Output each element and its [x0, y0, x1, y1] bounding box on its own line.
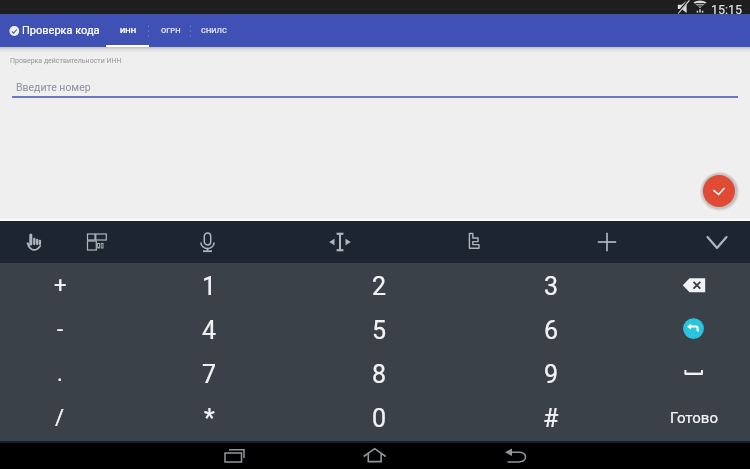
staticText: ИНН	[120, 26, 136, 35]
button[interactable]: Back	[491, 443, 541, 469]
staticText: 5	[372, 316, 387, 345]
staticText: 0	[372, 404, 387, 433]
staticText: /	[55, 405, 65, 431]
staticText: СНИЛС	[201, 26, 227, 35]
button[interactable]: 7	[120, 352, 298, 396]
staticText: 4	[202, 316, 217, 345]
button[interactable]: /	[0, 396, 120, 440]
button[interactable]: -	[0, 308, 120, 352]
button[interactable]: СНИЛС	[192, 14, 236, 47]
button[interactable]: 5	[298, 308, 461, 352]
button[interactable]: Hide keyboard	[696, 221, 738, 263]
button[interactable]: TouchPal	[452, 221, 494, 263]
button[interactable]: #	[461, 396, 641, 440]
staticText: 6	[544, 316, 559, 345]
button[interactable]: Handwriting	[13, 221, 55, 263]
staticText: 2	[372, 272, 387, 301]
button[interactable]: ОГРН	[149, 14, 192, 47]
staticText: .	[57, 361, 63, 387]
button[interactable]: Confirm	[703, 175, 735, 207]
button[interactable]: 0	[298, 396, 461, 440]
button[interactable]: Move cursor	[319, 221, 361, 263]
button[interactable]: Space	[641, 352, 750, 396]
button[interactable]: Home	[350, 443, 400, 469]
staticText: 3	[544, 272, 559, 301]
button[interactable]: 2	[298, 264, 461, 308]
staticText: 9	[544, 360, 559, 389]
staticText: 15:15	[711, 2, 743, 16]
button[interactable]: Add	[586, 221, 628, 263]
button[interactable]: 6	[461, 308, 641, 352]
button[interactable]: 3	[461, 264, 641, 308]
button[interactable]: Готово	[641, 396, 750, 440]
staticText: Проверка кода	[22, 24, 100, 37]
staticText: Введите номер	[16, 81, 91, 93]
button[interactable]: Voice input	[187, 221, 229, 263]
staticText: #	[543, 404, 559, 433]
button[interactable]: Enter	[641, 308, 750, 352]
button[interactable]: ИНН	[106, 14, 149, 47]
staticText: 8	[372, 360, 387, 389]
staticText: *	[204, 404, 215, 433]
button[interactable]: Keyboard layout	[75, 221, 117, 263]
button[interactable]: 1	[120, 264, 298, 308]
staticText: Готово	[670, 409, 718, 427]
button[interactable]: 9	[461, 352, 641, 396]
staticText: 1	[202, 272, 217, 301]
staticText: +	[54, 273, 67, 299]
button[interactable]: .	[0, 352, 120, 396]
button[interactable]: *	[120, 396, 298, 440]
button[interactable]: Recents	[209, 443, 259, 469]
button[interactable]: Backspace	[641, 264, 750, 308]
button[interactable]: 4	[120, 308, 298, 352]
button[interactable]: +	[0, 264, 120, 308]
staticText: Проверка действительности ИНН	[10, 57, 122, 65]
button[interactable]: 8	[298, 352, 461, 396]
staticText: -	[57, 317, 64, 343]
staticText: 7	[202, 360, 217, 389]
staticText: ОГРН	[161, 26, 181, 35]
